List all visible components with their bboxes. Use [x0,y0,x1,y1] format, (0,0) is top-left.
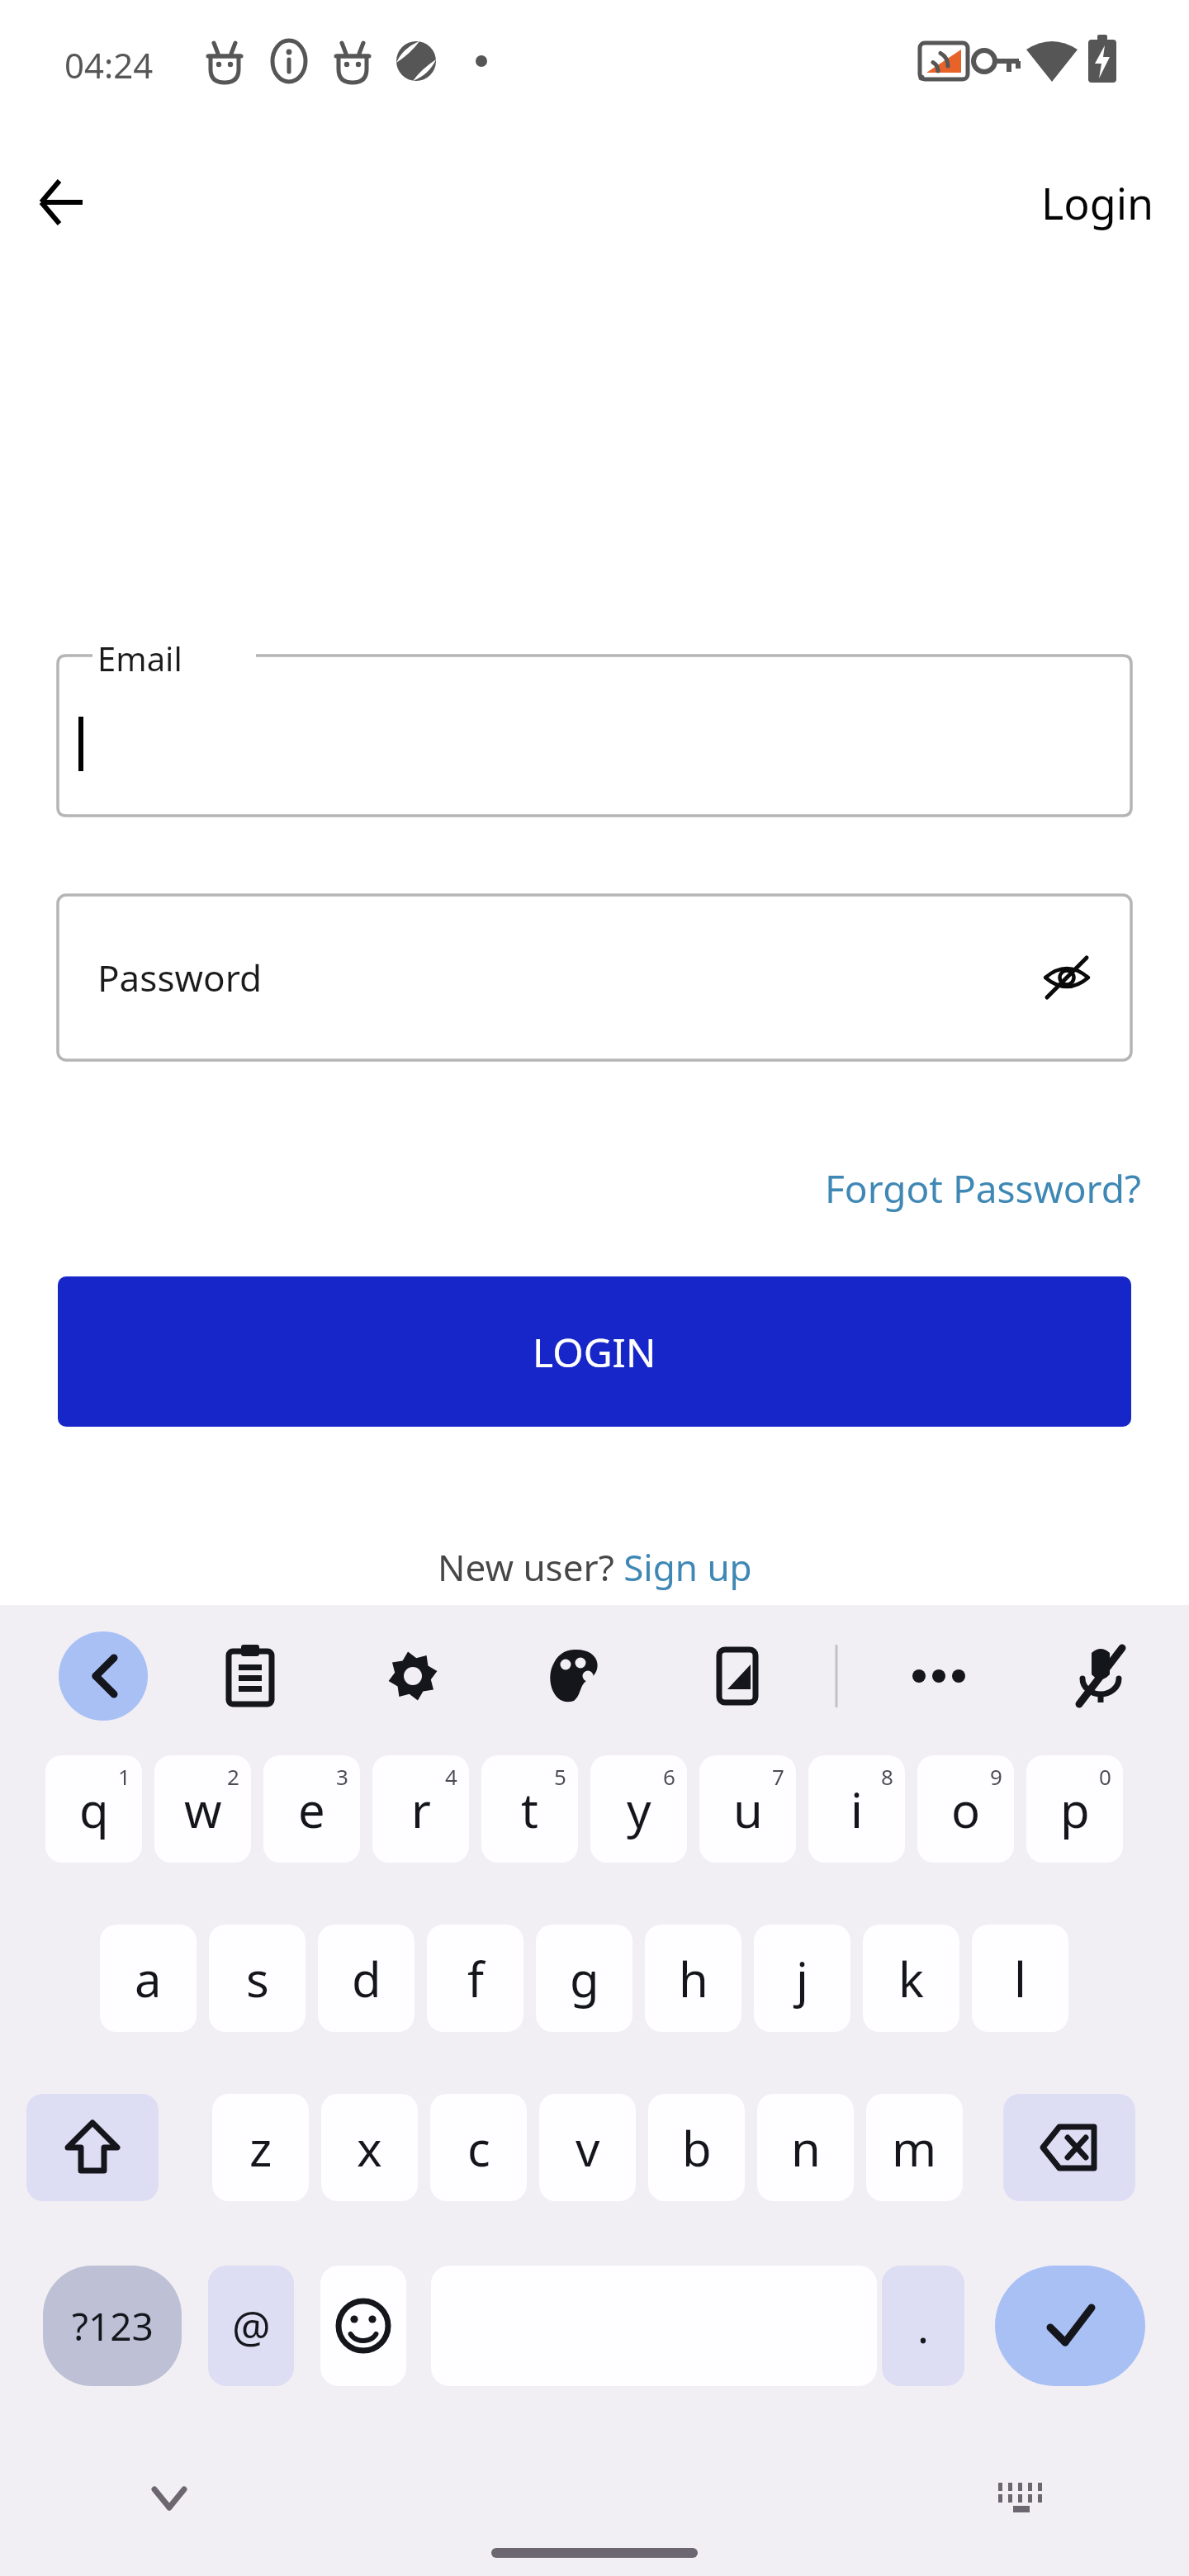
button[interactable]: d [318,1925,414,2032]
button[interactable]: w [154,1755,251,1863]
staticText: 7 [772,1762,784,1791]
staticText: Email [97,636,182,680]
button[interactable]: n [757,2094,854,2201]
staticText: x [357,2115,382,2181]
staticText: 2 [227,1762,239,1791]
button[interactable]: i [808,1755,905,1863]
button[interactable]: o [917,1755,1014,1863]
button[interactable]: y [590,1755,687,1863]
button[interactable]: f [427,1925,523,2032]
staticText: u [733,1777,763,1842]
staticText: t [521,1777,538,1842]
button[interactable]: a [100,1925,197,2032]
staticText: 0 [1099,1762,1111,1791]
staticText: 4 [445,1762,457,1791]
button[interactable]: Login [1041,173,1154,232]
staticText: b [682,2115,712,2181]
button[interactable]: k [863,1925,959,2032]
staticText: 3 [336,1762,348,1791]
button[interactable]: Emoji [320,2266,406,2386]
button[interactable]: Theme [531,1631,620,1721]
button[interactable]: Change keyboard [974,2452,1065,2543]
staticText: f [467,1946,484,2011]
staticText: z [249,2115,272,2181]
button[interactable]: z [212,2094,309,2201]
button[interactable]: h [645,1925,741,2032]
staticText: n [791,2115,821,2181]
button[interactable]: m [866,2094,963,2201]
staticText: q [79,1777,109,1842]
staticText: a [135,1946,162,2011]
staticText: o [951,1777,981,1842]
button[interactable]: c [430,2094,527,2201]
staticText: i [850,1777,863,1842]
staticText: m [892,2115,937,2181]
button[interactable]: Password [58,895,1131,1060]
button[interactable]: Clipboard [206,1631,295,1721]
button[interactable]: Voice input off [1056,1631,1145,1721]
button[interactable]: Enter [995,2266,1145,2386]
button[interactable]: Hide keyboard [124,2452,215,2543]
staticText: j [796,1946,808,2011]
staticText: 6 [663,1762,675,1791]
button[interactable]: u [699,1755,796,1863]
button[interactable]: Settings [368,1631,457,1721]
staticText: LOGIN [533,1325,656,1379]
button[interactable]: Previous [59,1631,148,1721]
staticText: l [1014,1946,1026,2011]
button[interactable]: Backspace [1003,2094,1135,2201]
button[interactable]: g [536,1925,632,2032]
staticText: e [298,1777,325,1842]
button[interactable]: Show password [1027,938,1106,1017]
button[interactable]: s [209,1925,306,2032]
button[interactable]: x [321,2094,418,2201]
button[interactable]: More options [894,1631,983,1721]
button[interactable]: v [539,2094,636,2201]
staticText: ?123 [72,2300,154,2352]
button[interactable]: e [263,1755,360,1863]
button[interactable]: New user? Sign up [438,1542,752,1592]
staticText: h [679,1946,708,2011]
button[interactable]: l [972,1925,1068,2032]
button[interactable]: @ [208,2266,294,2386]
staticText: p [1060,1777,1090,1842]
staticText: c [467,2115,490,2181]
staticText: Password [97,953,263,1002]
button[interactable]: p [1026,1755,1123,1863]
button[interactable]: q [45,1755,142,1863]
staticText: 5 [554,1762,566,1791]
staticText: g [570,1946,599,2011]
staticText: 8 [881,1762,893,1791]
staticText: 9 [990,1762,1002,1791]
staticText: y [627,1777,651,1842]
button[interactable]: b [648,2094,745,2201]
staticText: @ [232,2297,271,2356]
staticText: v [576,2115,600,2181]
staticText: r [411,1777,431,1842]
staticText: 04:24 [64,41,154,88]
button[interactable]: Shift [26,2094,159,2201]
button[interactable]: r [372,1755,469,1863]
button[interactable]: j [754,1925,850,2032]
button[interactable]: t [481,1755,578,1863]
staticText: w [184,1777,222,1842]
button[interactable]: One-handed mode [693,1631,782,1721]
button[interactable]: LOGIN [58,1276,1131,1427]
button[interactable]: ?123 [43,2266,182,2386]
button[interactable]: Back [21,163,101,242]
staticText: New user? Sign up [438,1542,752,1592]
staticText: 1 [118,1762,130,1791]
staticText: k [898,1946,924,2011]
button[interactable]: . [882,2266,964,2386]
staticText: . [917,2297,929,2356]
staticText: s [246,1946,269,2011]
button[interactable]: Forgot Password? [825,1163,1141,1215]
staticText: d [352,1946,381,2011]
